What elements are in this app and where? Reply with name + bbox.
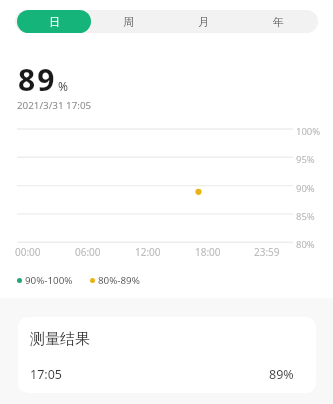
staticText: 周 bbox=[123, 15, 134, 29]
staticText: 90% bbox=[296, 182, 315, 195]
staticText: 100% bbox=[296, 125, 321, 138]
button[interactable]: 年 bbox=[241, 10, 316, 33]
staticText: 月 bbox=[198, 15, 209, 29]
staticText: 2021/3/31 17:05 bbox=[17, 99, 92, 112]
staticText: 85% bbox=[296, 210, 315, 223]
staticText: 89 bbox=[18, 59, 57, 100]
staticText: % bbox=[58, 78, 68, 94]
staticText: 测量结果 bbox=[30, 330, 90, 349]
staticText: 90%-100% bbox=[25, 274, 73, 287]
staticText: 80% bbox=[296, 238, 315, 251]
staticText: 95% bbox=[296, 153, 315, 166]
staticText: 23:59 bbox=[254, 245, 280, 259]
staticText: 00:00 bbox=[15, 245, 41, 259]
staticText: 17:05 bbox=[30, 366, 62, 383]
button[interactable]: 周 bbox=[91, 10, 166, 33]
staticText: 年 bbox=[273, 15, 284, 29]
staticText: 80%-89% bbox=[98, 274, 140, 287]
staticText: 日 bbox=[49, 15, 60, 29]
staticText: 12:00 bbox=[135, 245, 161, 259]
button[interactable]: 测量结果 bbox=[18, 317, 316, 393]
staticText: 06:00 bbox=[75, 245, 101, 259]
staticText: 89% bbox=[269, 366, 294, 383]
staticText: 18:00 bbox=[195, 245, 221, 259]
button[interactable]: 日 bbox=[17, 10, 91, 33]
button[interactable]: 月 bbox=[166, 10, 241, 33]
